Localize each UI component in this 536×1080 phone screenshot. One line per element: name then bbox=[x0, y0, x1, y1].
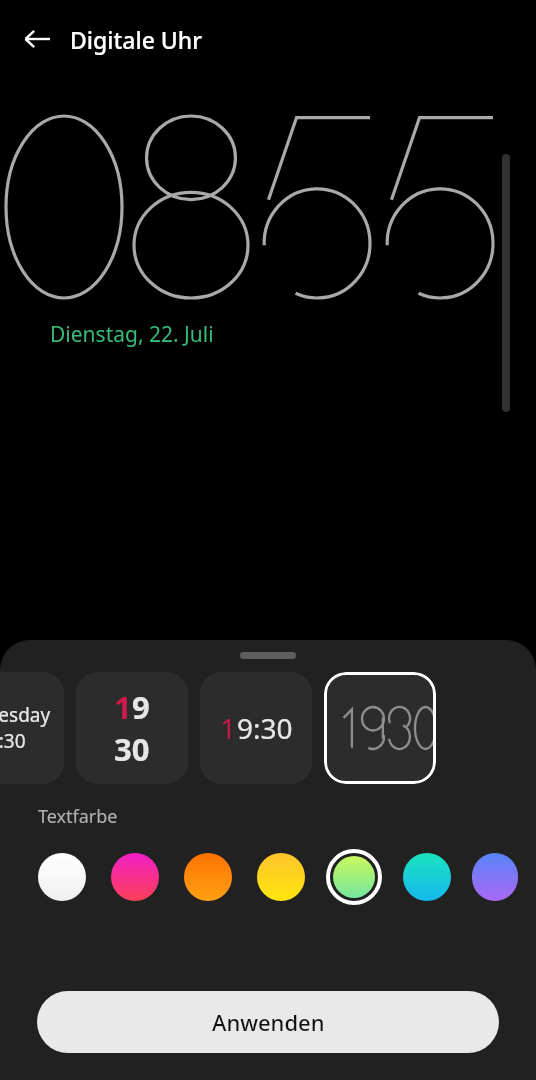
button[interactable]: Farbe 3 bbox=[180, 849, 236, 905]
staticText: Digitale Uhr bbox=[70, 24, 202, 55]
staticText: 9 bbox=[132, 686, 150, 728]
button[interactable]: Stil 2 bbox=[76, 672, 188, 784]
staticText: 19:30 bbox=[0, 728, 26, 754]
button[interactable]: Farbe 6 bbox=[399, 849, 455, 905]
staticText: 30 bbox=[114, 728, 150, 770]
staticText: 9:30 bbox=[237, 709, 293, 747]
staticText: Dienstag, 22. Juli bbox=[50, 320, 214, 349]
button[interactable]: Farbe 2 bbox=[107, 849, 163, 905]
staticText: Tuesday bbox=[0, 702, 51, 728]
button[interactable]: Zurück bbox=[12, 14, 62, 64]
button[interactable]: Farbe 5 bbox=[326, 849, 382, 905]
button[interactable]: Stil 1 bbox=[0, 672, 64, 784]
button[interactable]: Stil 3 bbox=[200, 672, 312, 784]
button[interactable]: Farbe 7 bbox=[472, 849, 518, 905]
staticText: 1 bbox=[114, 686, 132, 728]
button[interactable]: Stil 4 ausgewählt bbox=[324, 672, 436, 784]
staticText: Anwenden bbox=[212, 1007, 325, 1037]
button[interactable]: Farbe 1 bbox=[34, 849, 90, 905]
staticText: Textfarbe bbox=[38, 804, 118, 829]
staticText: 1 bbox=[220, 709, 237, 747]
button[interactable]: Farbe 4 bbox=[253, 849, 309, 905]
button[interactable]: Anwenden bbox=[37, 991, 499, 1053]
